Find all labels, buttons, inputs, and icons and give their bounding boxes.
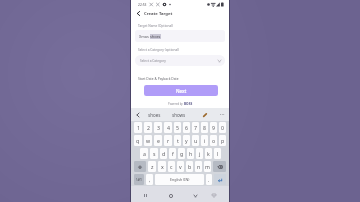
button[interactable]: 5 (174, 122, 181, 133)
button[interactable]: g (178, 148, 185, 159)
staticText: h (189, 150, 193, 157)
staticText: d (162, 150, 166, 157)
staticText: u (194, 137, 198, 144)
staticText: 22:53 (138, 2, 147, 6)
staticText: o (212, 137, 216, 144)
button[interactable]: Home (166, 191, 175, 200)
button[interactable]: Enter (214, 174, 226, 185)
button[interactable]: Backspace (213, 161, 226, 172)
button[interactable]: w (144, 135, 152, 146)
button[interactable]: 6 (183, 122, 190, 133)
staticText: Next (176, 88, 187, 94)
staticText: 3 (157, 124, 160, 131)
staticText: shows (172, 112, 186, 118)
button[interactable]: 8 (201, 122, 208, 133)
button[interactable]: h (187, 148, 194, 159)
staticText: 5 (176, 124, 179, 131)
staticText: q (136, 137, 140, 144)
button[interactable]: Hide keyboard (209, 191, 218, 200)
button[interactable]: s (150, 148, 158, 159)
staticText: . (208, 176, 210, 183)
button[interactable]: Xmas (135, 30, 225, 42)
button[interactable]: shows (172, 112, 186, 118)
button[interactable]: u (192, 135, 199, 146)
button[interactable]: 1 (134, 122, 142, 133)
staticText: 2 (147, 124, 150, 131)
staticText: BOSS (184, 102, 193, 106)
button[interactable]: 4 (164, 122, 172, 133)
staticText: , (149, 176, 151, 183)
staticText: 0 (221, 124, 224, 131)
button[interactable]: 9 (210, 122, 217, 133)
button[interactable]: 7 (192, 122, 199, 133)
button[interactable]: b (186, 161, 193, 172)
button[interactable]: , (146, 174, 153, 185)
staticText: z (151, 163, 154, 170)
staticText: l (217, 150, 219, 157)
button[interactable]: Recents (141, 191, 150, 200)
staticText: g (180, 150, 184, 157)
button[interactable]: a (140, 148, 148, 159)
staticText: Start Date & Payback Date (138, 76, 179, 80)
button[interactable]: z (148, 161, 156, 172)
button[interactable]: 3 (154, 122, 162, 133)
button[interactable]: Back (191, 191, 200, 200)
staticText: a (143, 150, 146, 157)
staticText: Xmas (139, 34, 150, 39)
staticText: e (157, 137, 160, 144)
staticText: w (146, 137, 151, 144)
staticText: t (177, 137, 179, 144)
button[interactable]: 2 (144, 122, 152, 133)
button[interactable]: c (168, 161, 175, 172)
staticText: 1 (137, 124, 140, 131)
button[interactable]: x (158, 161, 166, 172)
button[interactable]: n (195, 161, 202, 172)
button[interactable]: Back (135, 10, 142, 17)
button[interactable]: Handwriting (201, 111, 208, 118)
staticText: Select a Category (optional) (138, 48, 179, 52)
button[interactable]: j (196, 148, 203, 159)
button[interactable]: English (IN) (155, 174, 204, 185)
staticText: 7 (194, 124, 197, 131)
button[interactable]: Shift (134, 161, 146, 172)
button[interactable]: y (183, 135, 190, 146)
staticText: !#1 (136, 177, 143, 183)
staticText: j (199, 150, 201, 157)
staticText: r (167, 137, 170, 144)
button[interactable]: p (219, 135, 226, 146)
staticText: f (172, 150, 174, 157)
button[interactable]: q (134, 135, 142, 146)
button[interactable]: shoes (148, 112, 161, 118)
button[interactable]: o (210, 135, 217, 146)
staticText: Target Name (Optional) (138, 24, 173, 28)
button[interactable]: f (169, 148, 176, 159)
button[interactable]: 0 (219, 122, 226, 133)
button[interactable]: l (214, 148, 221, 159)
button[interactable]: e (154, 135, 162, 146)
staticText: c (170, 163, 173, 170)
staticText: v (179, 163, 182, 170)
staticText: b (188, 163, 192, 170)
button[interactable]: r (164, 135, 172, 146)
button[interactable]: Next (144, 85, 218, 96)
staticText: p (221, 137, 225, 144)
button[interactable]: Select a Category (135, 55, 225, 66)
staticText: n (197, 163, 201, 170)
button[interactable]: i (201, 135, 208, 146)
button[interactable]: t (174, 135, 181, 146)
button[interactable]: v (177, 161, 184, 172)
staticText: Powered by (168, 102, 184, 106)
button[interactable]: Previous suggestions (134, 111, 141, 118)
staticText: English (IN) (170, 177, 190, 182)
staticText: m (205, 163, 210, 170)
button[interactable]: d (160, 148, 167, 159)
button[interactable]: k (205, 148, 212, 159)
staticText: s (153, 150, 156, 157)
staticText: 9 (212, 124, 215, 131)
button[interactable]: More options (218, 111, 225, 118)
button[interactable]: !#1 (134, 174, 144, 185)
staticText: shoes (148, 112, 161, 118)
staticText: 4 (167, 124, 170, 131)
button[interactable]: m (204, 161, 211, 172)
button[interactable]: . (206, 174, 212, 185)
